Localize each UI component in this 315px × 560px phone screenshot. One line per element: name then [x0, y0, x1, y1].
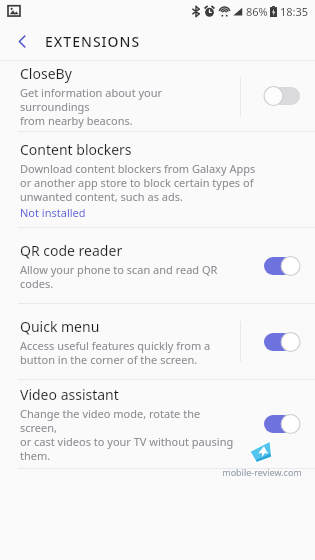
staticText: Quick menu	[20, 317, 100, 336]
staticText: Access useful features quickly from a bu…	[20, 338, 211, 367]
button[interactable]: QR code reader	[0, 228, 315, 303]
button[interactable]: CloseBy	[0, 61, 315, 131]
staticText: 18:35	[280, 4, 309, 19]
button[interactable]: CloseBy switch	[258, 79, 306, 113]
button[interactable]: Video assistant switch	[258, 407, 306, 441]
staticText: Video assistant	[20, 385, 119, 404]
staticText: mobile-review.com	[222, 466, 302, 478]
button[interactable]: Back	[5, 24, 39, 58]
staticText: Allow your phone to scan and read QR cod…	[20, 262, 218, 291]
staticText: CloseBy	[20, 64, 72, 83]
button[interactable]: Video assistant	[0, 380, 315, 468]
button[interactable]: Quick menu	[0, 304, 315, 379]
staticText: Not installed	[20, 205, 86, 220]
staticText: Get information about your surroundings …	[20, 85, 234, 128]
staticText: EXTENSIONS	[45, 32, 141, 51]
staticText: QR code reader	[20, 241, 123, 260]
button[interactable]: Quick menu switch	[258, 325, 306, 359]
button[interactable]: QR code reader switch	[258, 249, 306, 283]
staticText: 86%	[246, 4, 268, 19]
staticText: Download content blockers from Galaxy Ap…	[20, 161, 256, 204]
staticText: Change the video mode, rotate the screen…	[20, 406, 234, 463]
staticText: Content blockers	[20, 140, 132, 159]
button[interactable]: Content blockers	[0, 132, 315, 227]
